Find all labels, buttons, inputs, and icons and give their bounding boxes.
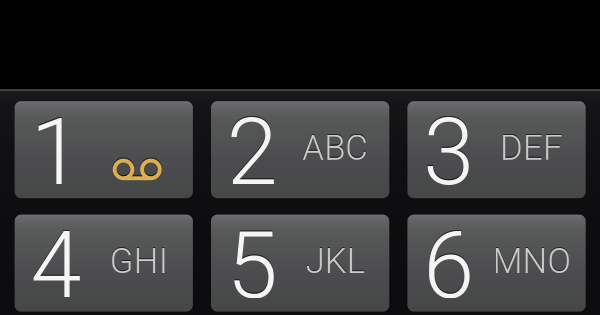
- staticText: MNO: [493, 240, 571, 280]
- staticText: GHI: [110, 240, 168, 280]
- button[interactable]: 4: [15, 215, 193, 312]
- staticText: GHI: [110, 241, 168, 281]
- staticText: JKL: [306, 240, 365, 280]
- staticText: 4: [30, 212, 81, 315]
- staticText: 5: [227, 211, 278, 315]
- staticText: 4: [30, 211, 81, 315]
- staticText: 2: [227, 97, 278, 205]
- button[interactable]: 3: [407, 101, 586, 198]
- staticText: 1: [30, 97, 81, 205]
- staticText: ABC: [302, 126, 368, 167]
- staticText: 3: [423, 99, 474, 206]
- button[interactable]: 1: [15, 101, 193, 198]
- staticText: ABC: [302, 127, 368, 168]
- staticText: 2: [227, 99, 278, 206]
- staticText: DEF: [500, 127, 563, 168]
- staticText: JKL: [306, 241, 365, 281]
- button[interactable]: 2: [211, 101, 389, 198]
- staticText: 6: [423, 211, 474, 315]
- staticText: DEF: [500, 126, 563, 167]
- staticText: 5: [227, 212, 278, 315]
- staticText: 6: [423, 212, 474, 315]
- staticText: 1: [30, 99, 81, 206]
- button[interactable]: 6: [407, 215, 586, 312]
- staticText: MNO: [493, 241, 571, 281]
- button[interactable]: 5: [211, 215, 389, 312]
- staticText: 3: [423, 97, 474, 205]
